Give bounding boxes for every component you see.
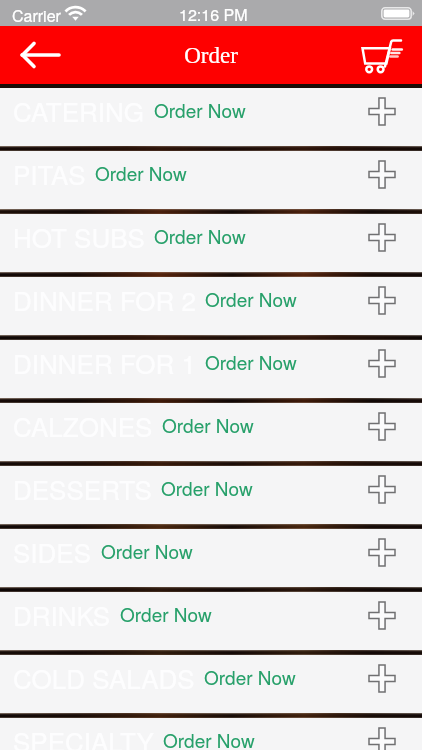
button[interactable]: Add PITAS [356, 151, 422, 209]
button[interactable]: CALZONES [0, 403, 422, 461]
button[interactable]: DESSERTS [0, 466, 422, 524]
staticText: Carrier [12, 4, 61, 27]
button[interactable]: DINNER FOR 1 [0, 340, 422, 398]
button[interactable]: Add DINNER FOR 2 [356, 277, 422, 335]
staticText: Order Now [95, 159, 187, 186]
button[interactable]: SIDES [0, 529, 422, 587]
staticText: Order Now [154, 222, 246, 249]
staticText: Order Now [101, 537, 193, 564]
button[interactable]: Add CATERING [356, 88, 422, 146]
staticText: Order [184, 43, 238, 68]
staticText: Order Now [205, 285, 297, 312]
button[interactable]: CATERING [0, 88, 422, 146]
button[interactable]: Add COLD SALADS [356, 655, 422, 713]
button[interactable]: Add SIDES [356, 529, 422, 587]
staticText: Order Now [205, 348, 297, 375]
button[interactable]: Add SPECIALTY [356, 718, 422, 750]
staticText: Order Now [154, 96, 246, 123]
staticText: DRINKS [13, 596, 111, 633]
button[interactable]: Add DESSERTS [356, 466, 422, 524]
button[interactable]: HOT SUBS [0, 214, 422, 272]
button[interactable]: Add DINNER FOR 1 [356, 340, 422, 398]
button[interactable]: Add HOT SUBS [356, 214, 422, 272]
staticText: Order Now [162, 411, 254, 438]
staticText: 12:16 PM [179, 3, 248, 26]
button[interactable]: Add CALZONES [356, 403, 422, 461]
button[interactable]: Back [0, 26, 82, 84]
staticText: Order Now [120, 600, 212, 627]
button[interactable]: DINNER FOR 2 [0, 277, 422, 335]
button[interactable]: Add DRINKS [356, 592, 422, 650]
button[interactable]: COLD SALADS [0, 655, 422, 713]
staticText: Order Now [163, 726, 255, 750]
button[interactable]: Shopping cart [342, 26, 422, 84]
staticText: Order Now [161, 474, 253, 501]
button[interactable]: PITAS [0, 151, 422, 209]
button[interactable]: SPECIALTY [0, 718, 422, 750]
button[interactable]: DRINKS [0, 592, 422, 650]
staticText: Order Now [204, 663, 296, 690]
